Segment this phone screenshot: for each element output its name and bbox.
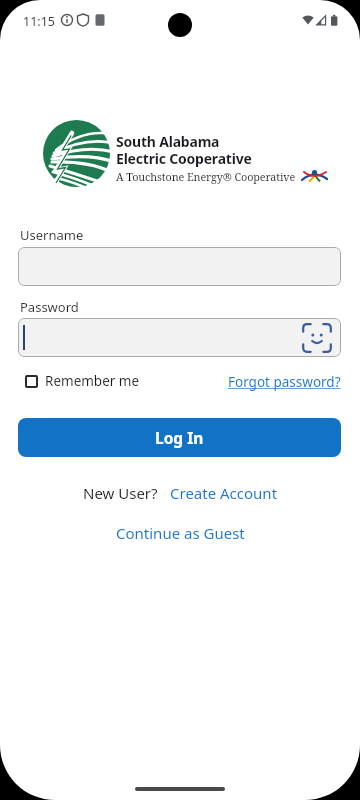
staticText: A Touchstone Energy® Cooperative	[116, 169, 296, 184]
button[interactable]: Forgot password?	[228, 373, 341, 391]
staticText: South Alabama	[116, 132, 220, 151]
button[interactable]	[18, 247, 341, 286]
button[interactable]	[18, 318, 341, 357]
staticText: New User?	[83, 483, 158, 503]
staticText: Username	[20, 226, 84, 244]
button[interactable]: Continue as Guest	[116, 523, 245, 543]
staticText: Electric Cooperative	[116, 149, 252, 168]
staticText: Remember me	[45, 372, 140, 390]
staticText: 11:15	[23, 13, 55, 30]
button[interactable]: Log In	[18, 418, 341, 457]
button[interactable]: Create Account	[170, 483, 278, 503]
button[interactable]	[302, 323, 332, 353]
staticText: Password	[20, 298, 79, 316]
button[interactable]: Remember me	[25, 372, 140, 390]
staticText: Log In	[155, 427, 204, 448]
